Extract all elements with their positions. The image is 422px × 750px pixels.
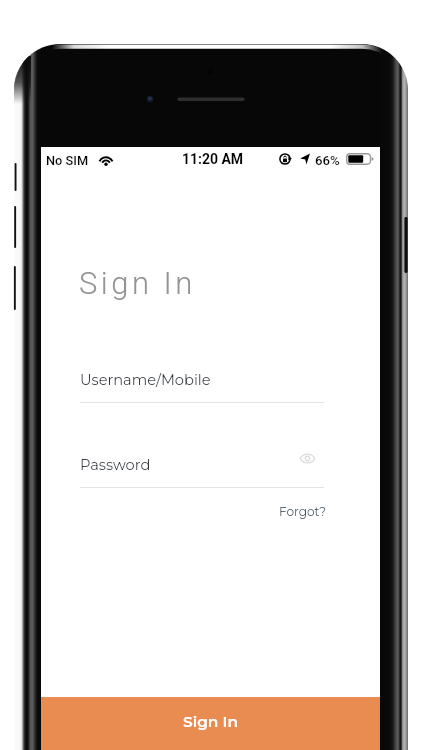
staticText: Forgot? (279, 504, 327, 519)
staticText: Username/Mobile (80, 371, 211, 389)
staticText: 66% (315, 153, 340, 168)
staticText: Password (80, 456, 151, 474)
staticText: Sign In (79, 265, 196, 301)
button[interactable]: Sign In (41, 697, 380, 750)
button[interactable]: Forgot? (262, 500, 327, 522)
staticText: 11:20 AM (43, 151, 382, 167)
staticText: Sign In (183, 712, 239, 731)
staticText: No SIM (46, 153, 89, 168)
button[interactable]: Show password (295, 446, 319, 470)
